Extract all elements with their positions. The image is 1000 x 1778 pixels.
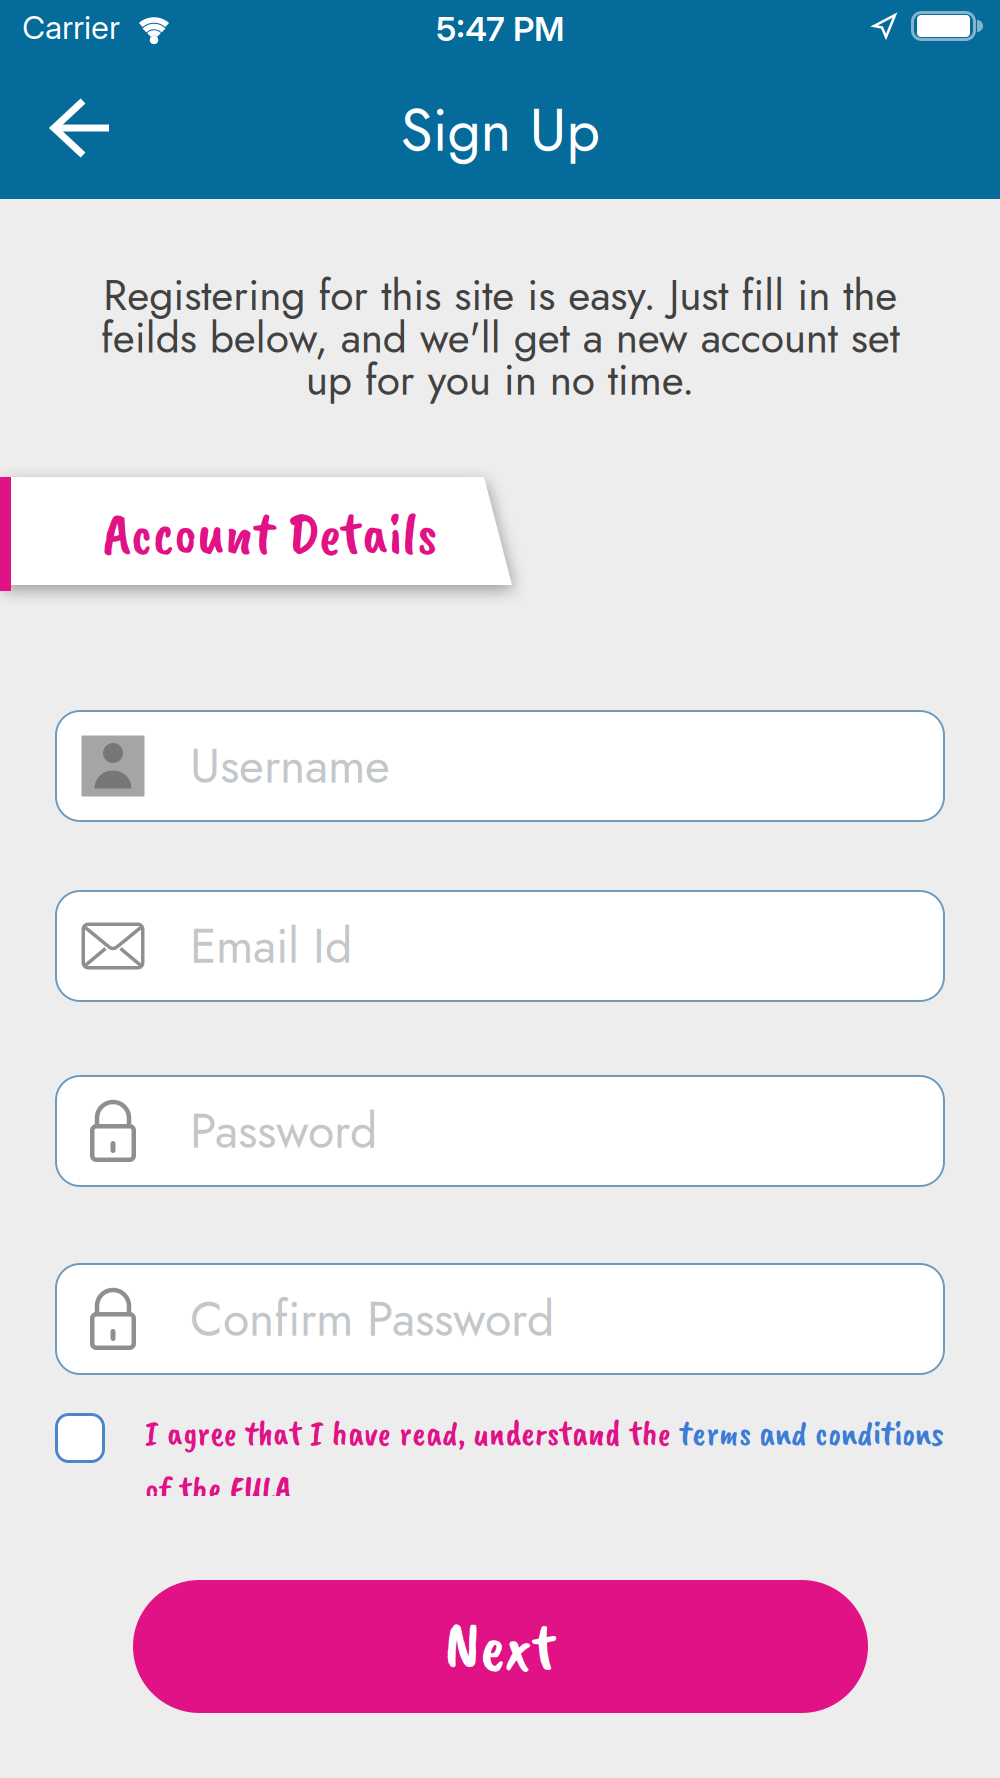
button[interactable]: Email Id xyxy=(55,890,945,1002)
button[interactable]: Username xyxy=(55,710,945,822)
staticText: Registering for this site is easy. Just … xyxy=(100,274,899,401)
staticText: Next xyxy=(445,1605,556,1688)
button[interactable]: Next xyxy=(133,1580,868,1713)
button[interactable]: terms and conditions xyxy=(679,1410,944,1455)
staticText: Confirm Password xyxy=(190,1284,554,1354)
button[interactable]: Back xyxy=(36,88,126,168)
button[interactable]: I agree to the terms and conditions of t… xyxy=(55,1413,105,1463)
button[interactable]: Confirm Password xyxy=(55,1263,945,1375)
staticText: terms and conditions xyxy=(679,1410,944,1455)
staticText: I agree that I have read, understand the xyxy=(145,1410,679,1455)
staticText: Username xyxy=(190,731,390,801)
staticText: Password xyxy=(190,1096,377,1166)
staticText: Account Details xyxy=(103,495,437,571)
button[interactable]: Password xyxy=(55,1075,945,1187)
staticText: Email Id xyxy=(190,911,352,981)
staticText: Sign Up xyxy=(400,88,599,173)
staticText: 5:47 PM xyxy=(436,8,564,49)
staticText: Carrier xyxy=(22,8,120,47)
staticText: of the EULA xyxy=(145,1466,292,1511)
